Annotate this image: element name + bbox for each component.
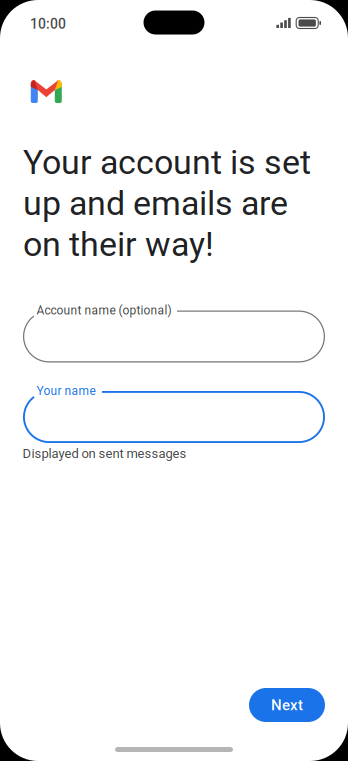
staticText: Your name [36,384,95,398]
staticText: Displayed on sent messages [22,446,186,461]
button[interactable]: Next [249,688,325,722]
staticText: Account name (optional) [36,303,171,318]
staticText: 10:00 [30,16,66,32]
staticText: Next [271,696,303,714]
staticText: up and emails are [23,184,288,223]
staticText: Your account is set [23,143,311,182]
staticText: on their way! [23,225,214,264]
